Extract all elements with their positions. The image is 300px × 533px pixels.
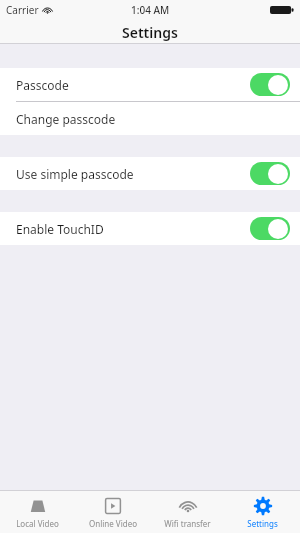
- button[interactable]: Passcode: [0, 68, 300, 101]
- staticText: Online Video: [89, 518, 137, 529]
- button[interactable]: Use simple passcode: [0, 157, 300, 190]
- staticText: Use simple passcode: [16, 166, 134, 182]
- button[interactable]: Online Video: [75, 491, 150, 533]
- button[interactable]: Toggle: [250, 162, 290, 185]
- staticText: Enable TouchID: [16, 221, 104, 237]
- staticText: Local Video: [16, 518, 59, 529]
- staticText: Settings: [122, 23, 178, 42]
- button[interactable]: Toggle: [250, 73, 290, 96]
- staticText: Passcode: [16, 77, 69, 93]
- staticText: Wifi transfer: [164, 518, 211, 529]
- button[interactable]: Toggle: [250, 217, 290, 240]
- button[interactable]: Settings: [225, 491, 300, 533]
- button[interactable]: Local Video: [0, 491, 75, 533]
- staticText: Change passcode: [16, 111, 116, 127]
- button[interactable]: Change passcode: [0, 102, 300, 135]
- button[interactable]: Wifi transfer: [150, 491, 225, 533]
- staticText: Carrier: [6, 3, 39, 17]
- staticText: Settings: [247, 518, 278, 529]
- button[interactable]: Enable TouchID: [0, 212, 300, 245]
- staticText: 1:04 AM: [131, 3, 170, 17]
